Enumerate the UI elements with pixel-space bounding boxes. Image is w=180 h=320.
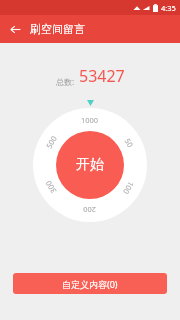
staticText: 刷空间留言 (30, 22, 85, 36)
button[interactable]: 开始 (56, 131, 124, 199)
staticText: 300 (43, 179, 58, 195)
staticText: 自定义内容(0) (62, 278, 118, 290)
staticText: 开始 (76, 156, 104, 174)
staticText: 53427 (79, 65, 125, 87)
button[interactable]: Back (7, 21, 23, 37)
button[interactable]: 自定义内容(0) (13, 273, 167, 294)
staticText: 1000 (81, 115, 99, 125)
staticText: 200 (83, 205, 96, 215)
staticText: 500 (44, 134, 59, 150)
staticText: 总数: (56, 76, 75, 87)
staticText: 4:35 (161, 3, 176, 13)
staticText: 100 (121, 180, 136, 196)
staticText: 50 (123, 136, 136, 149)
